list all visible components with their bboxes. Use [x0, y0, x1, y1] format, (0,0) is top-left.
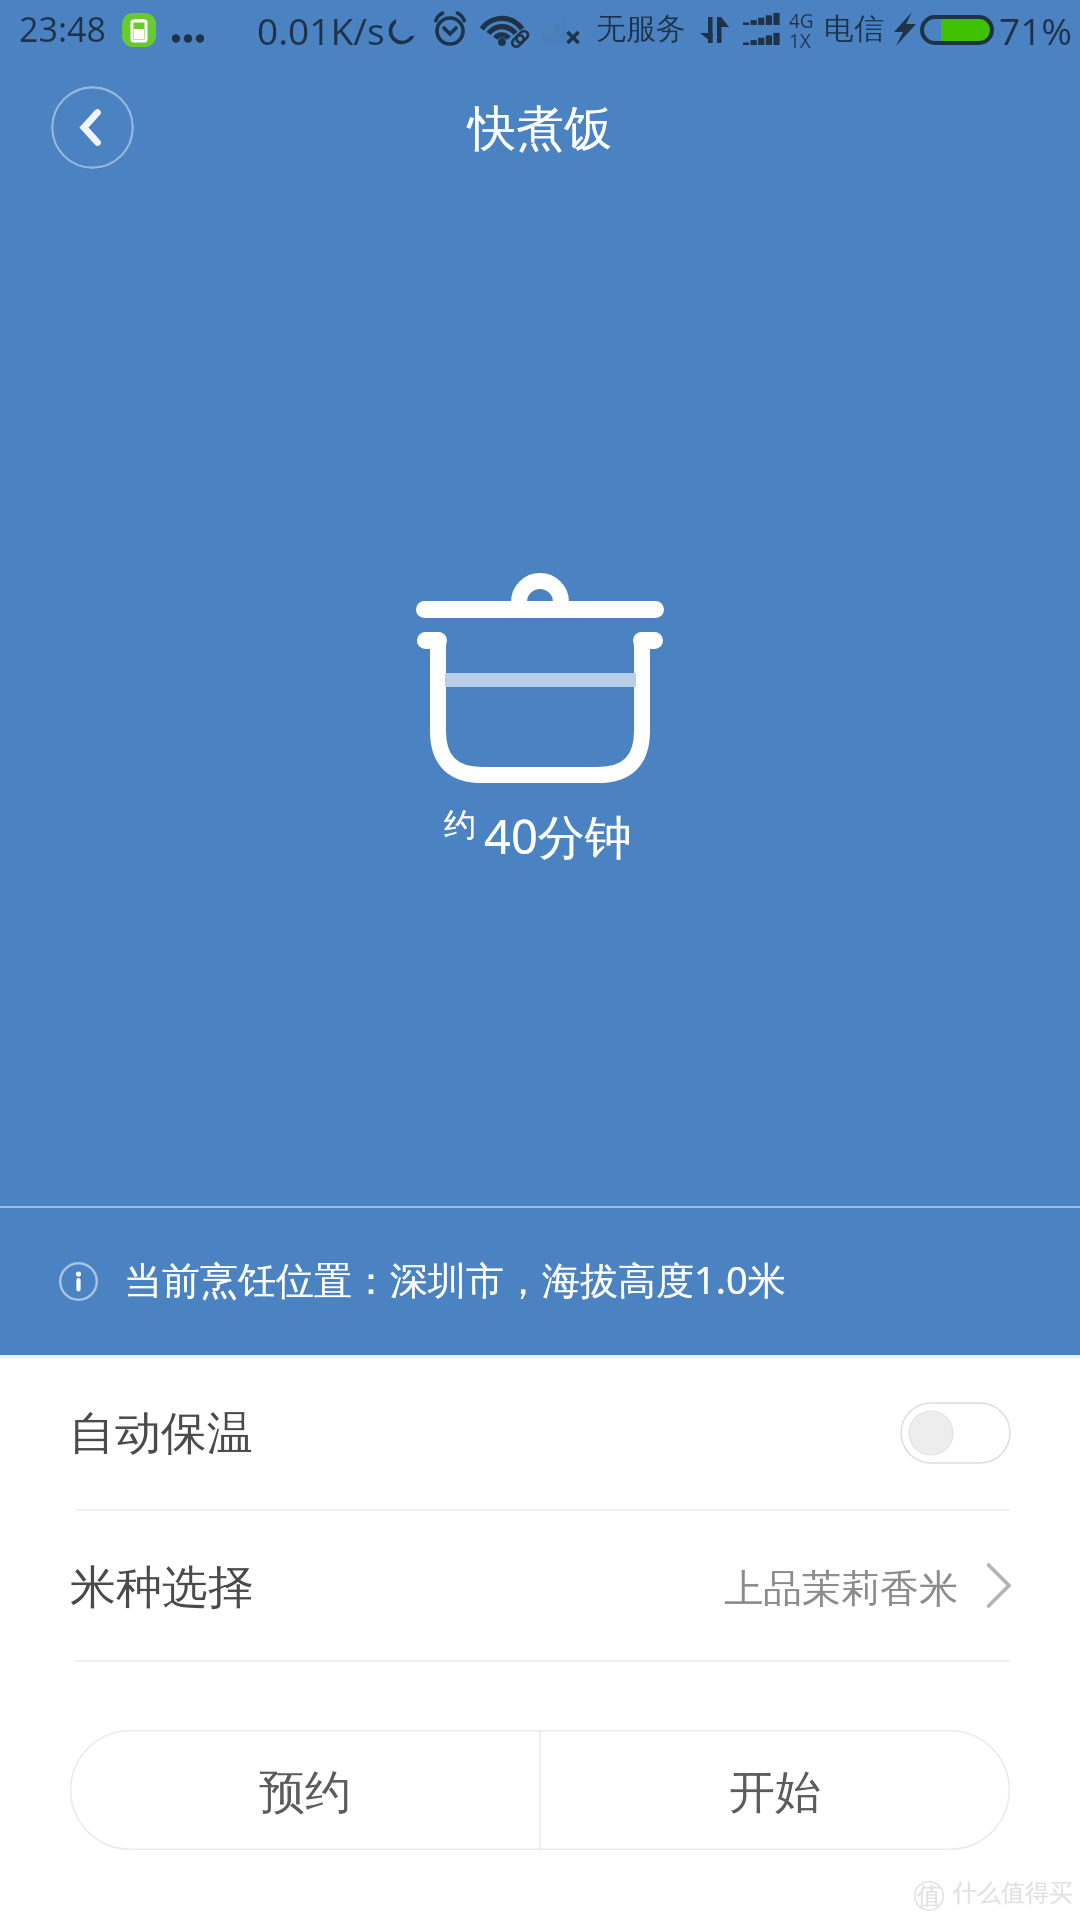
staticText: 约: [444, 805, 476, 845]
staticText: 电信: [824, 10, 884, 48]
staticText: 上品茉莉香米: [724, 1564, 958, 1613]
button[interactable]: Auto keep warm: [900, 1402, 1011, 1464]
staticText: 值: [917, 1881, 941, 1911]
staticText: 米种选择: [70, 1559, 254, 1617]
staticText: 当前烹饪位置：深圳市，海拔高度1.0米: [124, 1253, 786, 1305]
staticText: 什么值得买: [953, 1878, 1073, 1908]
button[interactable]: 自动保温: [0, 1355, 1080, 1511]
staticText: 无服务: [596, 10, 686, 48]
button[interactable]: 开始: [540, 1730, 1010, 1850]
staticText: 40分钟: [484, 804, 632, 868]
staticText: 开始: [729, 1764, 821, 1822]
button[interactable]: 米种选择: [0, 1511, 1080, 1660]
staticText: 23:48: [19, 6, 106, 52]
staticText: 1X: [789, 28, 812, 54]
staticText: 预约: [259, 1764, 351, 1822]
staticText: 71%: [999, 5, 1073, 55]
button[interactable]: 预约: [70, 1730, 540, 1850]
staticText: 自动保温: [69, 1405, 253, 1463]
staticText: 快煮饭: [0, 99, 1080, 159]
staticText: 0.01K/s: [257, 5, 385, 55]
button[interactable]: Back: [51, 86, 134, 169]
staticText: 4G: [789, 8, 814, 34]
